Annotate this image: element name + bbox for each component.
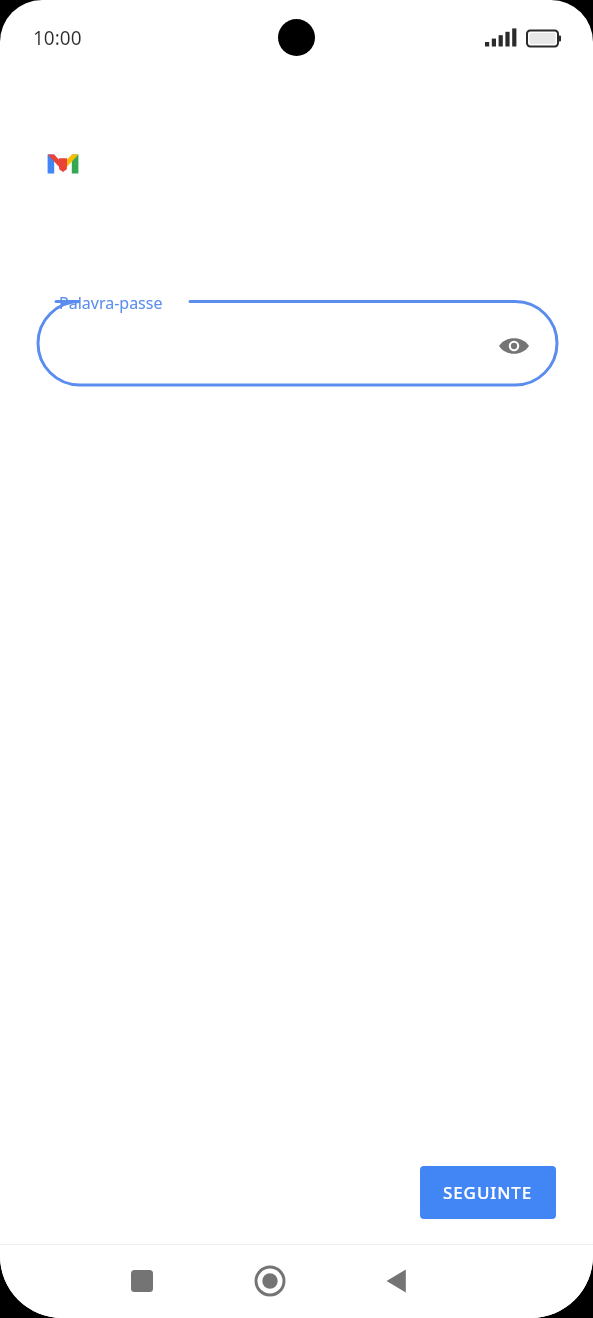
staticText: Palavra-passe — [59, 292, 163, 314]
button[interactable]: Início — [238, 1249, 302, 1313]
button[interactable]: Mostrar palavra-passe — [492, 324, 536, 368]
staticText: 10:00 — [33, 25, 82, 51]
button[interactable]: Palavra-passe — [38, 290, 557, 393]
button[interactable]: SEGUINTE — [420, 1166, 556, 1219]
button[interactable]: Voltar — [366, 1249, 430, 1313]
button[interactable]: Recentes — [110, 1249, 174, 1313]
staticText: SEGUINTE — [443, 1181, 533, 1204]
